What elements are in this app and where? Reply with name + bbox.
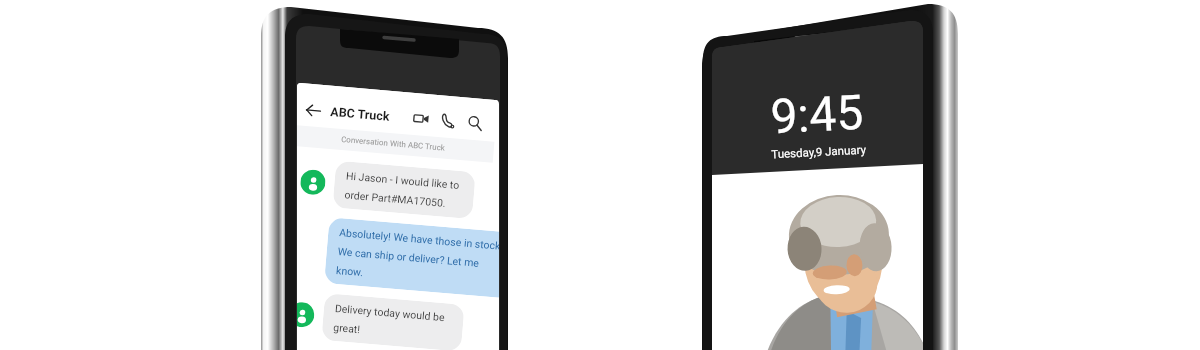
staticText: Conversation With ABC Truck	[341, 135, 446, 153]
staticText: Hi Jason - I would like to order Part#MA…	[344, 169, 464, 210]
button[interactable]: Call	[439, 112, 457, 129]
staticText: Absolutely! We have those in stock. We c…	[336, 226, 499, 290]
button[interactable]: Video call	[412, 110, 430, 127]
button[interactable]: Absolutely! We have those in stock. We c…	[324, 217, 499, 299]
button[interactable]: Search	[466, 114, 484, 132]
button[interactable]: Hi Jason - I would like to order Part#MA…	[332, 161, 476, 219]
button[interactable]: Delivery today would be great!	[321, 293, 465, 350]
button[interactable]: Back	[304, 101, 322, 119]
staticText: ABC Truck	[330, 104, 391, 124]
staticText: 9:45	[712, 81, 923, 147]
staticText: Delivery today would be great!	[333, 302, 453, 343]
staticText: Tuesday,9 January	[713, 140, 923, 163]
